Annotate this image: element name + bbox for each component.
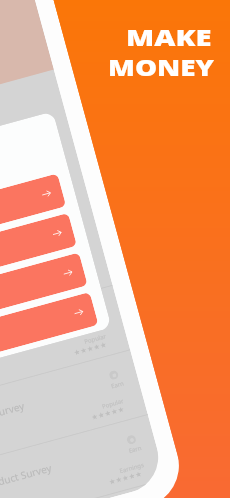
- button[interactable]: Research Survey: [0, 479, 166, 498]
- button[interactable]: Open: [0, 252, 88, 323]
- button[interactable]: Product Survey: [0, 414, 165, 498]
- staticText: Daily Survey: [0, 335, 5, 363]
- staticText: Quick Survey: [0, 398, 26, 428]
- staticText: MAKE: [126, 21, 212, 52]
- other: Open: [72, 306, 85, 319]
- button[interactable]: Open: [0, 213, 77, 284]
- staticText: Earn: [93, 315, 107, 326]
- staticText: Popular: [83, 332, 108, 346]
- staticText: Earn: [128, 444, 142, 455]
- staticText: Product Survey: [0, 460, 53, 493]
- staticText: MONEY: [108, 51, 214, 82]
- button[interactable]: Open: [0, 292, 99, 363]
- staticText: Popular: [101, 397, 125, 411]
- staticText: Earnings: [119, 461, 145, 475]
- other: Open: [62, 267, 74, 279]
- other: Open: [51, 227, 63, 240]
- staticText: Earn: [110, 379, 125, 390]
- other: Open: [40, 188, 52, 200]
- button[interactable]: Daily Survey: [0, 285, 130, 400]
- button[interactable]: Quick Survey: [0, 349, 148, 464]
- button[interactable]: Open: [0, 173, 66, 244]
